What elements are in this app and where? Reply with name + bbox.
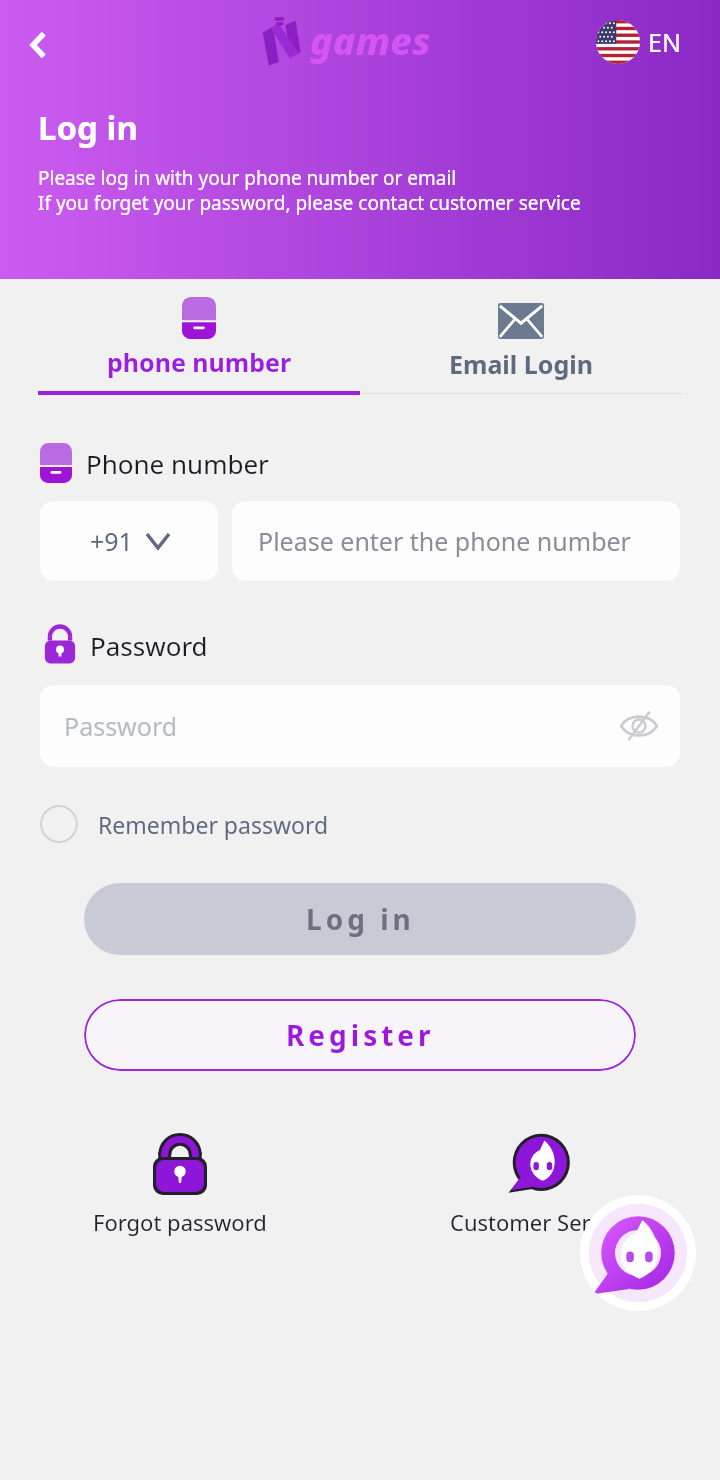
staticText: EN [648,25,681,59]
button[interactable]: Show password [616,703,662,749]
staticText: Password [64,709,178,743]
staticText: Remember password [98,809,329,840]
button[interactable]: Password [40,685,680,767]
staticText: Please log in with your phone number or … [38,165,457,191]
staticText: games [310,14,431,66]
button[interactable]: Customer Service chat [580,1195,696,1311]
button[interactable]: Email Login [360,289,682,401]
staticText: Email Login [449,347,593,381]
staticText: Log in [38,105,138,150]
staticText: Log in [306,900,415,938]
staticText: Phone number [86,446,269,481]
staticText: Customer Service [450,1207,631,1237]
button[interactable]: Back [10,16,68,74]
button[interactable]: Log in [84,883,636,955]
button[interactable]: EN [596,20,681,64]
staticText: Forgot password [93,1207,267,1237]
staticText: +91 [90,524,133,558]
button[interactable]: +91 [40,501,218,581]
staticText: If you forget your password, please cont… [38,190,581,216]
staticText: Password [90,628,208,663]
button[interactable]: Forgot password [0,1133,360,1237]
staticText: Please enter the phone number [258,524,631,558]
button[interactable]: Please enter the phone number [232,501,680,581]
staticText: Register [286,1016,435,1054]
button[interactable]: phone number [38,289,360,401]
button[interactable]: Remember password [40,805,329,843]
button[interactable]: Register [84,999,636,1071]
button[interactable]: Customer Service [360,1133,720,1237]
staticText: phone number [107,345,292,379]
